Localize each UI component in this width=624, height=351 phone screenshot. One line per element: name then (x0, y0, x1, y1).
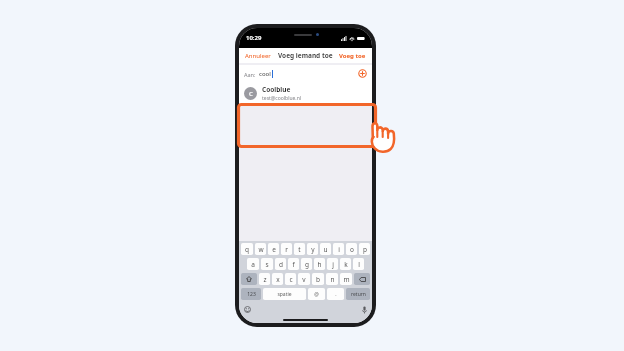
button[interactable]: b (312, 273, 324, 285)
button[interactable]: i (333, 243, 344, 255)
button[interactable]: Shift (241, 273, 257, 285)
button[interactable]: spatie (263, 288, 306, 300)
button[interactable]: q (241, 243, 253, 255)
button[interactable]: return (346, 288, 370, 300)
staticText: y (311, 245, 315, 254)
staticText: d (279, 260, 283, 269)
staticText: r (285, 245, 288, 254)
staticText: t (298, 245, 301, 254)
button[interactable]: p (359, 243, 370, 255)
button[interactable]: w (255, 243, 266, 255)
staticText: e (272, 245, 276, 254)
button[interactable]: Backspace (354, 273, 370, 285)
staticText: C (249, 90, 253, 98)
staticText: test@coolblue.nl (262, 95, 302, 102)
button[interactable]: j (327, 258, 338, 270)
staticText: x (276, 275, 280, 284)
button[interactable]: s (261, 258, 273, 270)
staticText: Annuleer (245, 52, 271, 60)
staticText: o (350, 245, 354, 254)
button[interactable]: Voeg toe (333, 50, 372, 62)
button[interactable]: e (268, 243, 279, 255)
staticText: p (363, 245, 367, 254)
button[interactable]: o (346, 243, 357, 255)
button[interactable]: u (320, 243, 331, 255)
staticText: l (358, 260, 360, 269)
button[interactable]: n (326, 273, 338, 285)
button[interactable]: z (259, 273, 270, 285)
staticText: spatie (277, 291, 292, 298)
button[interactable]: f (288, 258, 299, 270)
staticText: n (330, 275, 335, 284)
staticText: g (305, 260, 309, 269)
button[interactable]: C (239, 82, 372, 104)
staticText: i (338, 245, 340, 254)
button[interactable]: 123 (241, 288, 261, 300)
button[interactable]: y (307, 243, 318, 255)
staticText: z (263, 275, 267, 284)
staticText: Voeg iemand toe (278, 51, 333, 60)
staticText: Coolblue (262, 85, 291, 94)
button[interactable]: Dicteren (362, 306, 367, 314)
button[interactable]: m (340, 273, 352, 285)
button[interactable]: r (281, 243, 292, 255)
button[interactable]: k (340, 258, 351, 270)
staticText: b (316, 275, 320, 284)
button[interactable]: l (353, 258, 364, 270)
staticText: @ (314, 291, 319, 298)
button[interactable]: g (301, 258, 312, 270)
button[interactable]: c (285, 273, 296, 285)
button[interactable]: h (314, 258, 325, 270)
staticText: Aan: (244, 71, 256, 78)
button[interactable]: Annuleer (239, 50, 277, 62)
button[interactable]: x (272, 273, 283, 285)
staticText: 10:29 (246, 34, 262, 42)
button[interactable]: Aan: (239, 65, 372, 82)
staticText: return (351, 291, 366, 298)
staticText: c (289, 275, 293, 284)
staticText: Voeg toe (339, 52, 366, 60)
button[interactable]: t (294, 243, 305, 255)
staticText: f (292, 260, 295, 269)
button[interactable]: @ (308, 288, 325, 300)
button[interactable]: v (298, 273, 310, 285)
button[interactable]: . (327, 288, 344, 300)
staticText: 123 (247, 291, 256, 298)
button[interactable]: a (247, 258, 259, 270)
button[interactable]: Voeg contact toe (358, 69, 367, 78)
staticText: cool (259, 70, 271, 78)
staticText: h (317, 260, 322, 269)
button[interactable]: Emoji (244, 306, 251, 313)
staticText: q (245, 245, 249, 254)
staticText: j (332, 260, 334, 269)
staticText: a (251, 260, 255, 269)
staticText: s (265, 260, 269, 269)
staticText: v (302, 275, 306, 284)
staticText: k (344, 260, 348, 269)
staticText: . (335, 291, 337, 298)
staticText: w (258, 245, 264, 254)
staticText: m (343, 275, 350, 284)
staticText: u (323, 245, 328, 254)
button[interactable]: d (275, 258, 286, 270)
